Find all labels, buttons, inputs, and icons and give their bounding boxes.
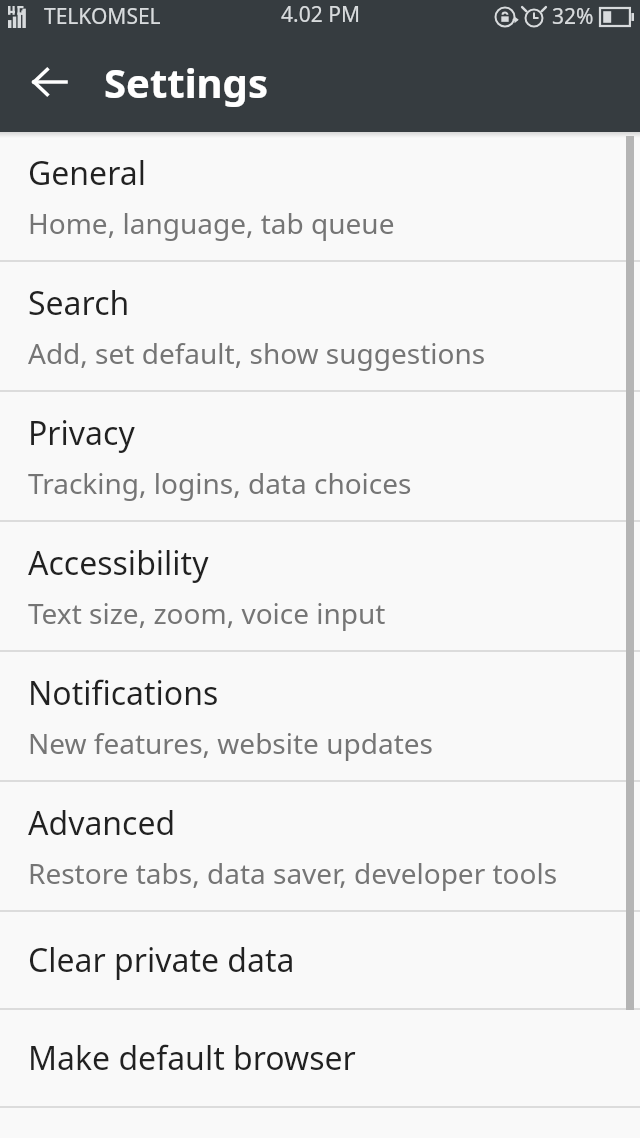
staticText: Restore tabs, data saver, developer tool…: [28, 854, 558, 892]
staticText: Tracking, logins, data choices: [28, 464, 412, 502]
button[interactable]: Advanced: [0, 782, 640, 910]
staticText: Search: [28, 281, 130, 325]
staticText: Advanced: [28, 801, 176, 845]
button[interactable]: Search: [0, 262, 640, 390]
staticText: General: [28, 151, 146, 195]
staticText: Home, language, tab queue: [28, 204, 395, 242]
staticText: Settings: [104, 55, 268, 109]
staticText: 4.02 PM: [281, 0, 360, 29]
staticText: Clear private data: [28, 938, 295, 982]
staticText: Privacy: [28, 411, 135, 455]
button[interactable]: Notifications: [0, 652, 640, 780]
button[interactable]: Clear private data: [0, 912, 640, 1008]
staticText: Accessibility: [28, 541, 209, 585]
staticText: TELKOMSEL: [44, 2, 161, 31]
staticText: Text size, zoom, voice input: [28, 594, 386, 632]
button[interactable]: General: [0, 132, 640, 260]
staticText: Add, set default, show suggestions: [28, 334, 486, 372]
button[interactable]: Accessibility: [0, 522, 640, 650]
button[interactable]: Make default browser: [0, 1010, 640, 1106]
button[interactable]: Privacy: [0, 392, 640, 520]
staticText: New features, website updates: [28, 724, 433, 762]
staticText: Make default browser: [28, 1036, 356, 1080]
staticText: 32%: [552, 2, 594, 31]
button[interactable]: Navigate up: [14, 46, 86, 118]
staticText: Notifications: [28, 671, 219, 715]
